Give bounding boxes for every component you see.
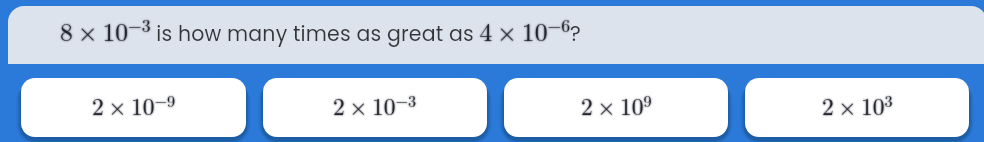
button[interactable]: 2 × 103: [745, 78, 969, 137]
staticText: 8 × 10−3 is how many times as great as 4…: [60, 12, 581, 48]
staticText: 2 × 10−3: [333, 89, 417, 122]
staticText: 2 × 10−9: [92, 89, 176, 122]
staticText: 2 × 103: [822, 89, 893, 122]
button[interactable]: 2 × 10−3: [263, 78, 487, 137]
button[interactable]: 2 × 109: [504, 78, 728, 137]
button[interactable]: 2 × 10−9: [21, 78, 246, 137]
staticText: 2 × 109: [581, 89, 652, 122]
